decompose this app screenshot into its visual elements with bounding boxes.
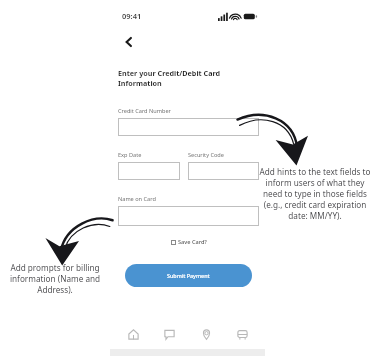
button[interactable]: Messages: [160, 325, 178, 343]
staticText: Credit Card Number: [118, 107, 171, 115]
button[interactable]: [118, 206, 259, 226]
button[interactable]: Transit: [233, 325, 251, 343]
staticText: Security Code: [188, 151, 224, 159]
button[interactable]: Save Card?: [118, 238, 259, 246]
staticText: Add hints to the text fields to inform u…: [258, 166, 372, 221]
button[interactable]: Submit Payment: [125, 264, 252, 287]
staticText: Enter your Credit/Debit Card Information: [118, 68, 259, 88]
staticText: Add prompts for billing information (Nam…: [3, 262, 107, 295]
staticText: 09:41: [122, 11, 142, 21]
button[interactable]: [188, 162, 259, 180]
button[interactable]: Home: [124, 325, 142, 343]
staticText: Name on Card: [118, 195, 156, 203]
staticText: Submit Payment: [167, 272, 210, 279]
button[interactable]: Location: [197, 325, 215, 343]
staticText: Save Card?: [178, 238, 207, 246]
button[interactable]: Back: [118, 31, 140, 53]
staticText: Exp Date: [118, 151, 142, 159]
button[interactable]: [118, 118, 259, 136]
button[interactable]: [118, 162, 180, 180]
